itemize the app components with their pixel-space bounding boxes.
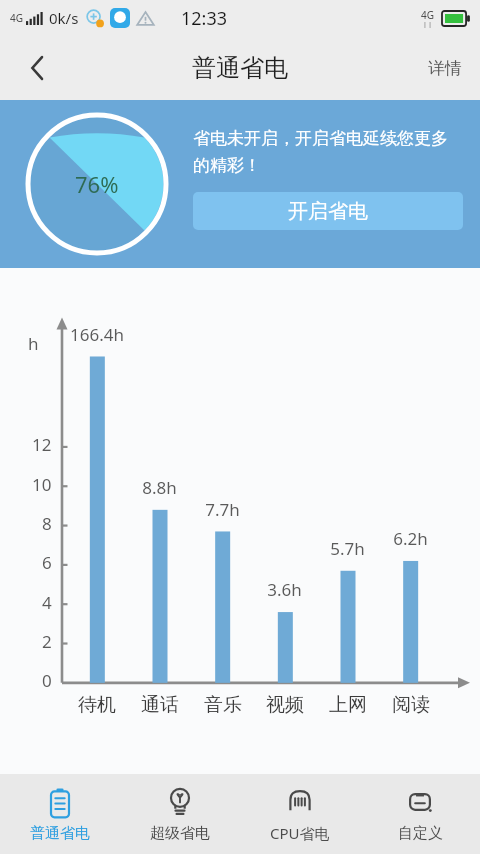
staticText: 76%	[75, 169, 119, 199]
button[interactable]: 自定义	[360, 774, 480, 854]
button[interactable]: Back	[10, 41, 64, 95]
staticText: 上网	[329, 693, 367, 717]
staticText: 4G	[10, 11, 23, 25]
staticText: h	[28, 332, 39, 355]
staticText: 3.6h	[267, 578, 302, 601]
staticText: 4G	[421, 8, 434, 22]
staticText: CPU省电	[270, 823, 330, 843]
button[interactable]: 开启省电	[193, 192, 463, 230]
button[interactable]: CPU省电	[240, 774, 360, 854]
staticText: 阅读	[392, 693, 430, 717]
staticText: 10	[32, 473, 52, 496]
staticText: 音乐	[204, 693, 242, 717]
button[interactable]: 普通省电	[0, 774, 120, 854]
staticText: 4	[42, 591, 52, 614]
staticText: 5.7h	[330, 537, 365, 560]
staticText: 8.8h	[142, 476, 177, 499]
staticText: 视频	[266, 693, 304, 717]
staticText: 省电未开启，开启省电延续您更多的精彩！	[193, 128, 463, 176]
staticText: 超级省电	[150, 824, 210, 843]
staticText: 0k/s	[49, 8, 79, 28]
staticText: 6.2h	[393, 527, 428, 550]
staticText: 12:33	[181, 6, 228, 31]
staticText: 普通省电	[30, 824, 90, 843]
button[interactable]: 详情	[410, 42, 480, 95]
staticText: 待机	[78, 693, 116, 717]
staticText: 8	[42, 512, 52, 535]
staticText: 普通省电	[192, 53, 288, 83]
button[interactable]: 超级省电	[120, 774, 240, 854]
staticText: 通话	[141, 693, 179, 717]
staticText: 详情	[428, 58, 462, 79]
staticText: 0	[42, 669, 52, 692]
staticText: 7.7h	[205, 498, 240, 521]
staticText: 166.4h	[70, 323, 124, 346]
staticText: 自定义	[398, 824, 443, 843]
staticText: 开启省电	[288, 199, 368, 224]
staticText: 12	[32, 433, 52, 456]
staticText: 2	[42, 630, 52, 653]
staticText: 6	[42, 551, 52, 574]
